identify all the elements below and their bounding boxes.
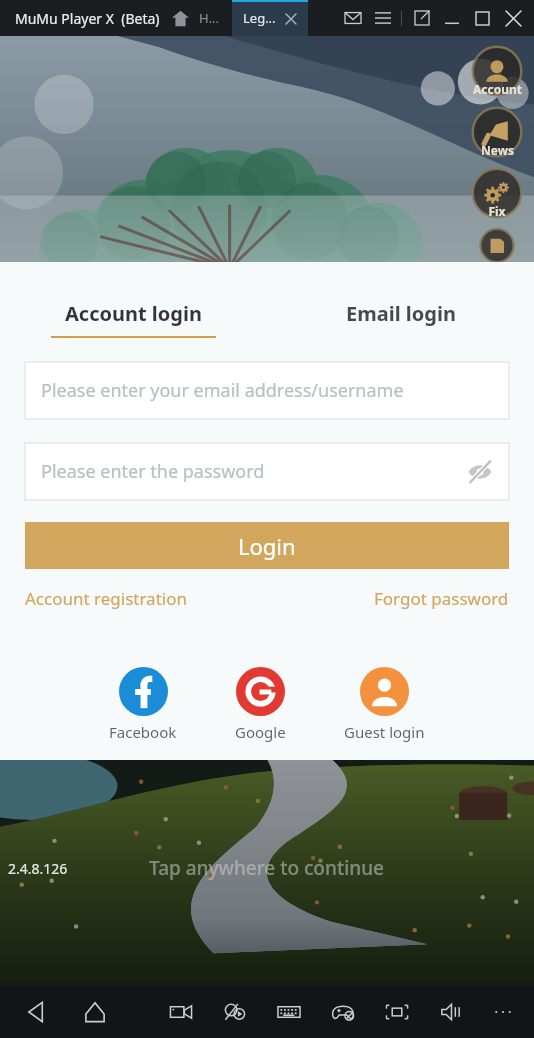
- staticText: Leg...: [243, 9, 276, 27]
- button[interactable]: Login: [25, 522, 509, 569]
- button[interactable]: Google: [231, 667, 290, 742]
- staticText: Please enter the password: [41, 459, 265, 484]
- button[interactable]: Gamepad off: [326, 995, 360, 1029]
- staticText: Google: [235, 722, 286, 742]
- button[interactable]: News: [470, 105, 524, 159]
- staticText: Login: [238, 531, 296, 561]
- button[interactable]: Menu: [368, 3, 398, 33]
- button[interactable]: Home: [168, 6, 192, 30]
- button[interactable]: Please enter your email address/username: [25, 362, 509, 419]
- staticText: Facebook: [109, 722, 177, 742]
- button[interactable]: Forgot password: [374, 587, 509, 610]
- button[interactable]: Fix: [470, 166, 524, 220]
- button[interactable]: Full screen: [380, 995, 414, 1029]
- staticText: Email login: [346, 300, 456, 327]
- button[interactable]: Volume: [434, 995, 468, 1029]
- staticText: Account registration: [25, 587, 187, 610]
- button[interactable]: Leg...: [232, 0, 308, 36]
- staticText: Account: [473, 81, 522, 97]
- staticText: 2.4.8.126: [8, 859, 68, 878]
- staticText: Forgot password: [374, 587, 509, 610]
- button[interactable]: Account registration: [25, 587, 187, 610]
- button[interactable]: Email login: [267, 300, 534, 327]
- button[interactable]: Restore down: [407, 3, 437, 33]
- button[interactable]: Home: [78, 995, 112, 1029]
- staticText: Please enter your email address/username: [41, 378, 404, 403]
- staticText: News: [481, 142, 514, 158]
- button[interactable]: Macro: [218, 995, 252, 1029]
- staticText: Fix: [488, 203, 506, 219]
- button[interactable]: Maximize: [467, 3, 497, 33]
- staticText: H...: [199, 9, 220, 27]
- button[interactable]: Account login: [0, 300, 267, 338]
- button[interactable]: Close tab: [283, 11, 298, 26]
- button[interactable]: Please enter the password: [25, 443, 509, 500]
- staticText: MuMu Player X (Beta): [15, 9, 160, 28]
- button[interactable]: Show password: [463, 455, 497, 489]
- button[interactable]: Facebook: [105, 667, 181, 742]
- staticText: Tap anywhere to continue: [149, 855, 385, 881]
- button[interactable]: Keyboard: [272, 995, 306, 1029]
- staticText: Account login: [65, 300, 202, 327]
- button[interactable]: Notice: [470, 227, 524, 264]
- button[interactable]: Messages: [338, 3, 368, 33]
- button[interactable]: Back: [20, 995, 54, 1029]
- button[interactable]: More: [486, 995, 520, 1029]
- button[interactable]: Minimize: [437, 3, 467, 33]
- button[interactable]: Guest login: [340, 667, 429, 742]
- button[interactable]: Account: [470, 44, 524, 98]
- button[interactable]: Close: [497, 2, 529, 34]
- button[interactable]: Record: [164, 995, 198, 1029]
- staticText: Guest login: [344, 722, 425, 742]
